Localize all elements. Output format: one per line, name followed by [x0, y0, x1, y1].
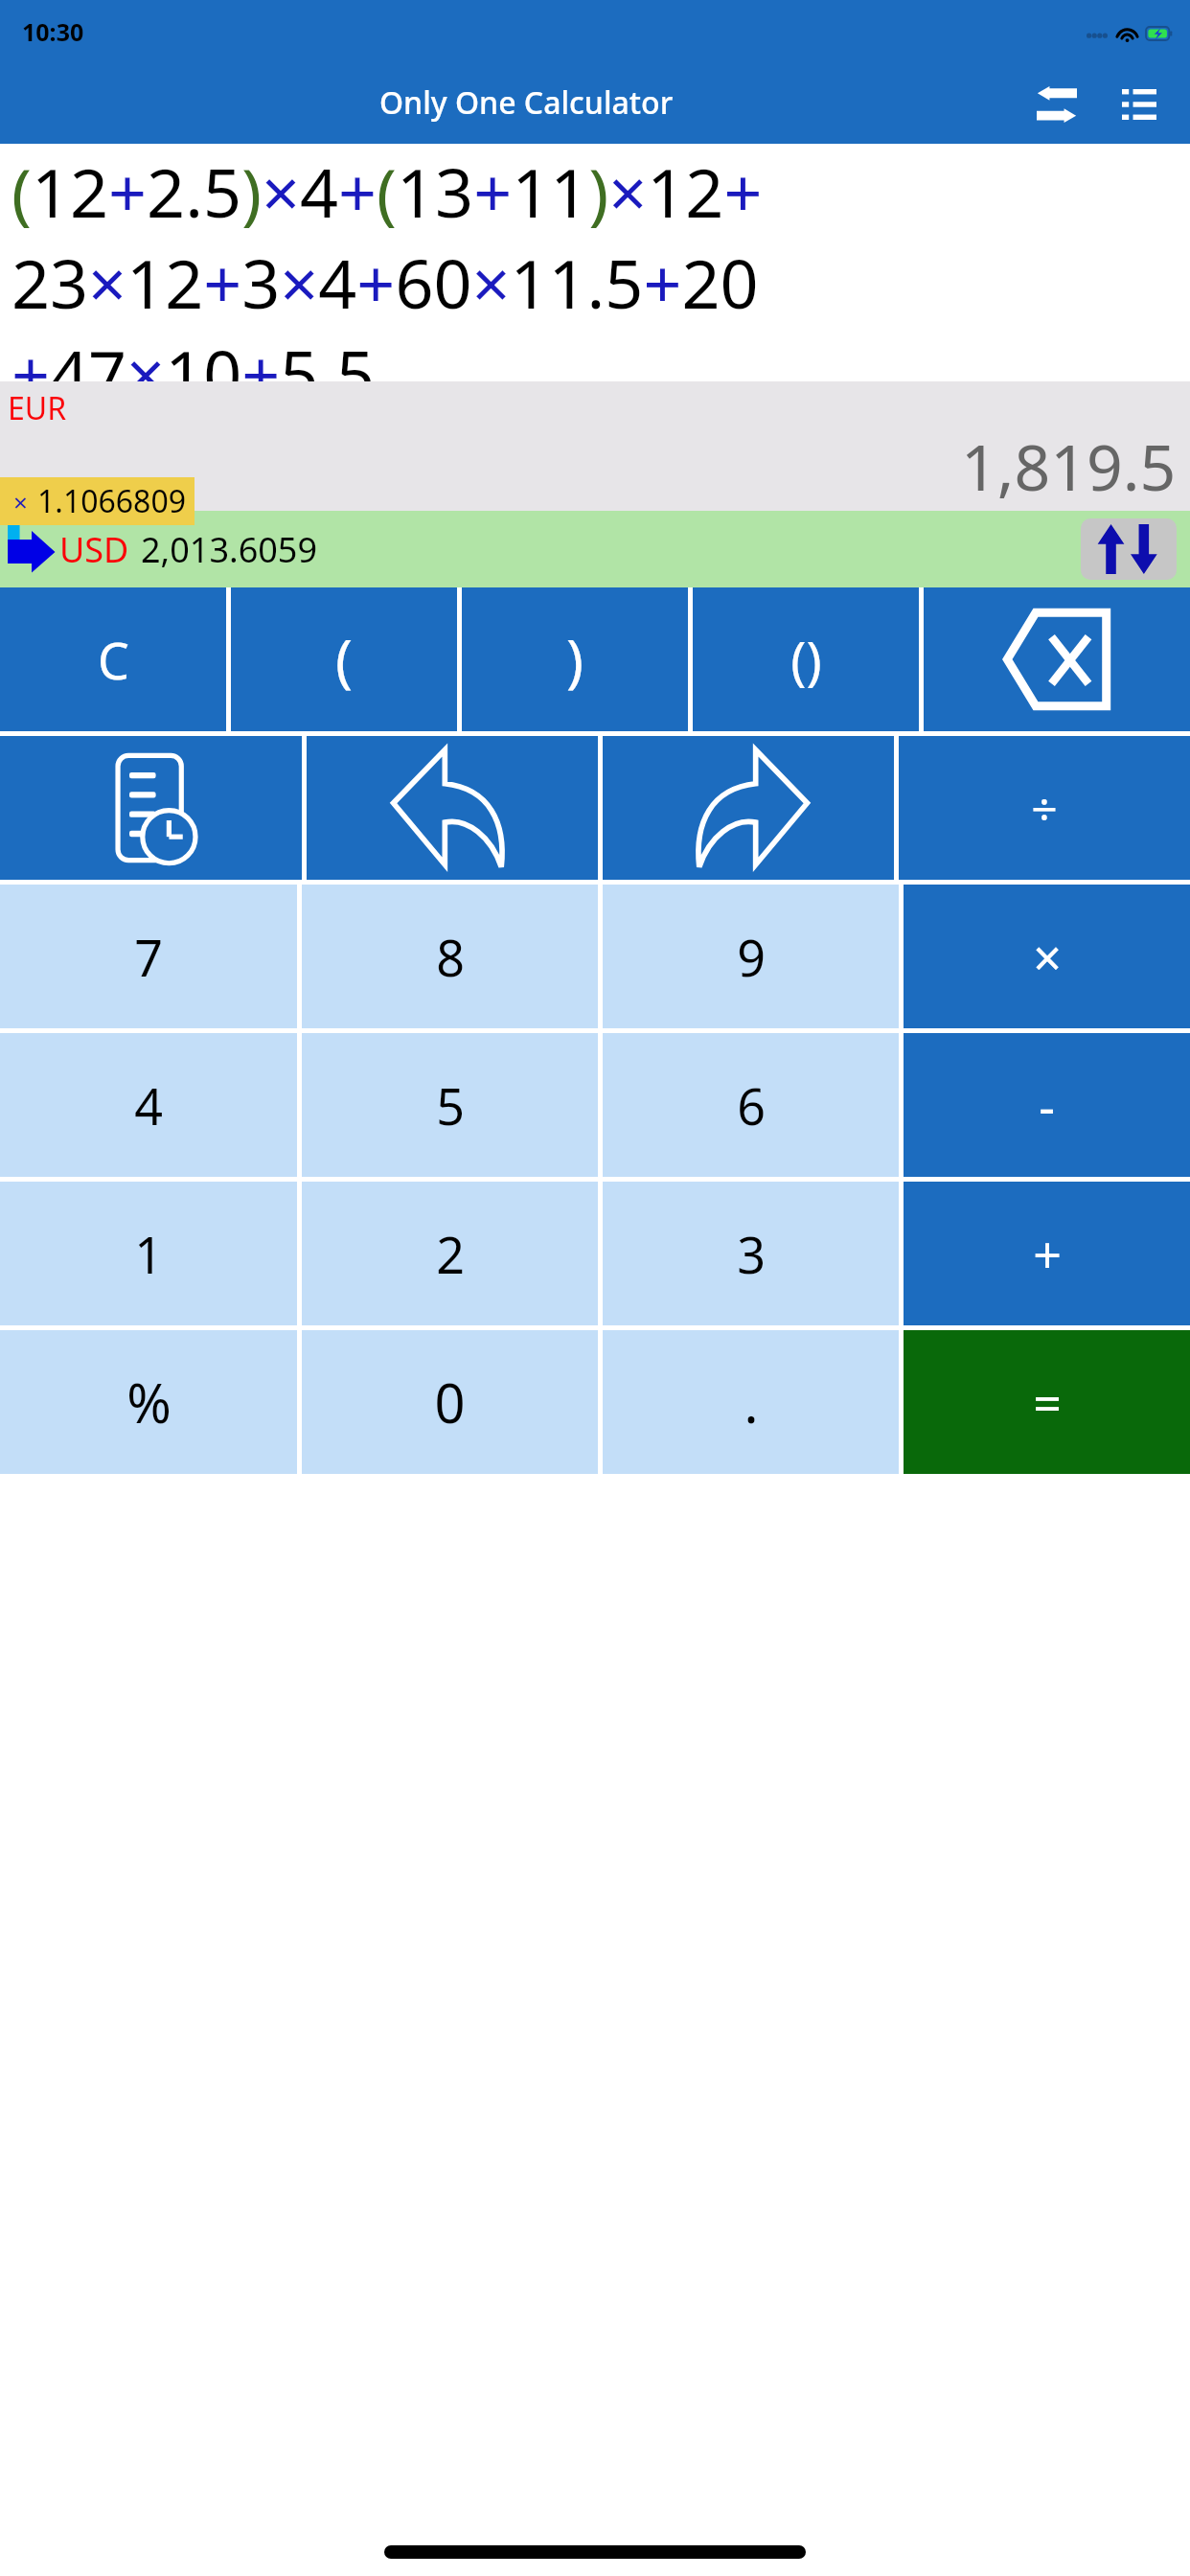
button[interactable]: 7 [0, 885, 297, 1028]
staticText: 1,819.5 [961, 423, 1177, 509]
staticText: 8 [436, 923, 465, 991]
button[interactable]: Redo [603, 736, 894, 880]
staticText: 2 [436, 1220, 465, 1288]
button[interactable]: 8 [302, 885, 598, 1028]
button[interactable]: ( [231, 587, 457, 731]
button[interactable]: % [0, 1330, 297, 1474]
staticText: 7 [134, 923, 163, 991]
button[interactable]: 4 [0, 1033, 297, 1177]
staticText: × [13, 485, 28, 518]
staticText: C [98, 626, 129, 694]
staticText: × [1033, 923, 1062, 991]
staticText: . [744, 1366, 759, 1438]
staticText: EUR [8, 387, 67, 429]
button[interactable]: () [693, 587, 919, 731]
button[interactable]: . [603, 1330, 899, 1474]
staticText: 5 [436, 1071, 465, 1139]
button[interactable]: Undo [307, 736, 598, 880]
button[interactable]: Swap currencies [1027, 75, 1087, 134]
staticText: 1 [134, 1220, 163, 1288]
button[interactable]: 3 [603, 1182, 899, 1325]
button[interactable]: EUR [0, 381, 1190, 511]
staticText: 1.1066809 [37, 480, 187, 522]
staticText: 2,013.6059 [141, 526, 318, 573]
button[interactable]: Backspace [924, 587, 1190, 731]
button[interactable]: 2 [302, 1182, 598, 1325]
staticText: 10:30 [22, 15, 84, 48]
staticText: + [1033, 1220, 1062, 1288]
staticText: ( [335, 620, 353, 699]
staticText: +47×10+5.5 [11, 328, 376, 381]
staticText: = [1033, 1368, 1062, 1437]
staticText: 23×12+3×4+60×11.5+20 [11, 237, 759, 328]
staticText: % [126, 1366, 172, 1438]
button[interactable]: + [904, 1182, 1190, 1325]
button[interactable]: ) [462, 587, 688, 731]
button[interactable]: = [904, 1330, 1190, 1474]
staticText: 6 [737, 1071, 766, 1139]
staticText: ÷ [1031, 777, 1058, 839]
staticText: Only One Calculator [379, 81, 674, 124]
staticText: - [1039, 1071, 1055, 1139]
button[interactable]: USD [0, 511, 1190, 587]
staticText: 9 [737, 923, 766, 991]
button[interactable]: 6 [603, 1033, 899, 1177]
button[interactable]: History [0, 736, 302, 880]
button[interactable]: × [904, 885, 1190, 1028]
button[interactable]: Swap direction [1081, 518, 1177, 580]
button[interactable]: - [904, 1033, 1190, 1177]
button[interactable]: 1 [0, 1182, 297, 1325]
button[interactable]: 0 [302, 1330, 598, 1474]
staticText: () [790, 624, 822, 695]
button[interactable]: ÷ [899, 736, 1190, 880]
button[interactable]: Menu [1110, 75, 1169, 134]
staticText: (12+2.5)×4+(13+11)×12+ [11, 146, 763, 237]
button[interactable]: (12+2.5)×4+(13+11)×12+ [11, 146, 1180, 381]
button[interactable]: C [0, 587, 226, 731]
staticText: ) [566, 620, 584, 699]
staticText: 0 [434, 1366, 466, 1438]
button[interactable]: 5 [302, 1033, 598, 1177]
staticText: USD [59, 526, 129, 573]
staticText: 4 [134, 1071, 163, 1139]
staticText: 3 [737, 1220, 766, 1288]
button[interactable]: × [0, 477, 195, 525]
button[interactable]: 9 [603, 885, 899, 1028]
